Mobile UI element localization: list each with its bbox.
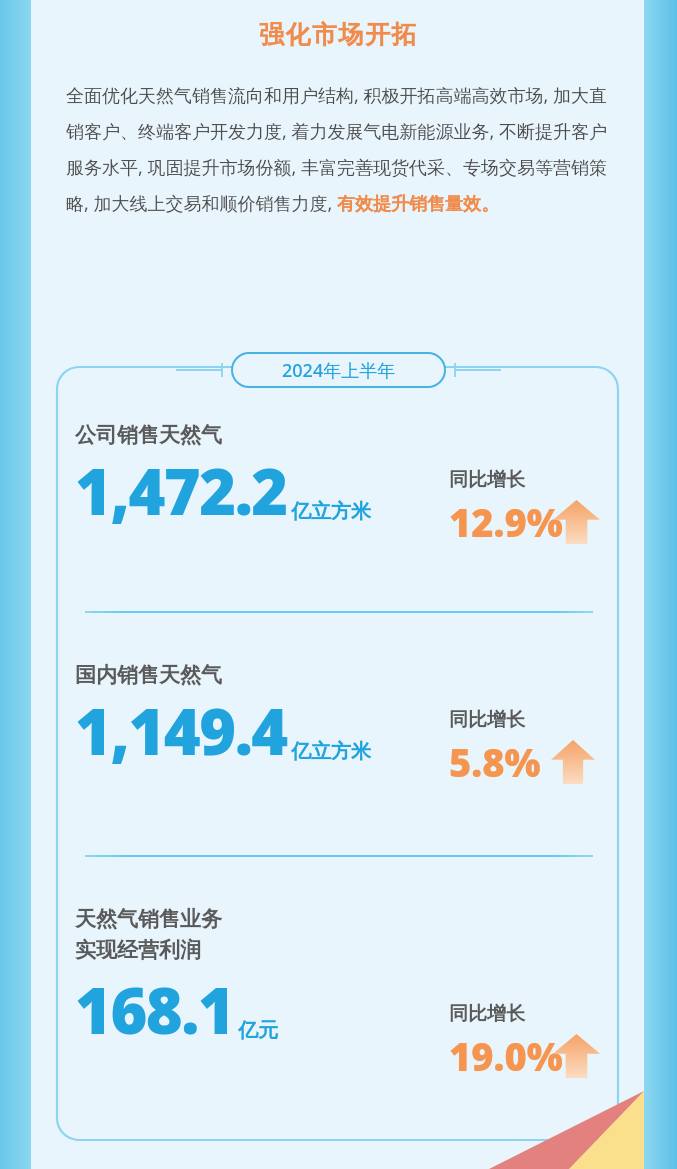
staticText: 亿立方米 <box>291 739 371 764</box>
staticText: 5.8% <box>449 736 541 788</box>
staticText: 同比增长 <box>449 468 525 492</box>
staticText: 强化市场开拓 <box>0 19 677 50</box>
staticText: 天然气销售业务 实现经营利润 <box>75 906 222 963</box>
staticText: 公司销售天然气 <box>75 422 222 448</box>
staticText: 168.1 <box>75 967 234 1053</box>
staticText: 12.9% <box>449 496 563 548</box>
staticText: 全面优化天然气销售流向和用户结构, 积极开拓高端高效市场, 加大直销客户、终端客… <box>66 83 615 216</box>
staticText: 国内销售天然气 <box>75 662 222 688</box>
staticText: 同比增长 <box>449 1002 525 1026</box>
staticText: 1,149.4 <box>75 688 287 774</box>
staticText: 19.0% <box>449 1030 563 1082</box>
staticText: 亿立方米 <box>291 499 371 524</box>
button[interactable]: 2024年上半年 <box>232 353 445 387</box>
staticText: 1,472.2 <box>75 448 287 534</box>
staticText: 亿元 <box>238 1018 278 1043</box>
staticText: 同比增长 <box>449 708 525 732</box>
staticText: 2024年上半年 <box>282 358 396 383</box>
